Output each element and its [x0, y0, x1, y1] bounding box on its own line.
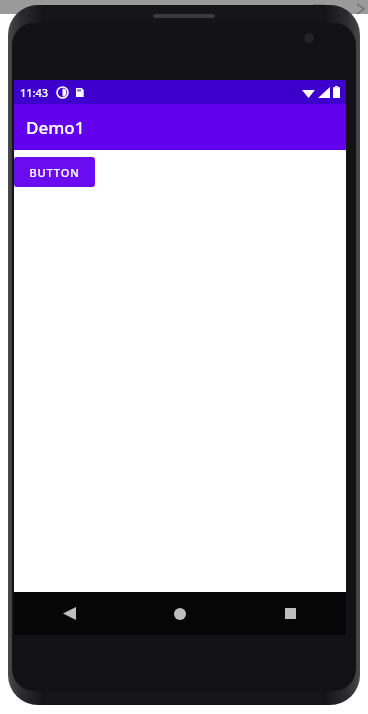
button[interactable]: Back — [14, 592, 124, 635]
staticText: BUTTON — [29, 165, 80, 180]
button[interactable]: Recent apps — [235, 592, 346, 635]
staticText: Demo1 — [26, 116, 85, 139]
button[interactable]: Home — [124, 592, 235, 635]
staticText: 11:43 — [20, 85, 49, 100]
button[interactable]: BUTTON — [14, 157, 95, 187]
